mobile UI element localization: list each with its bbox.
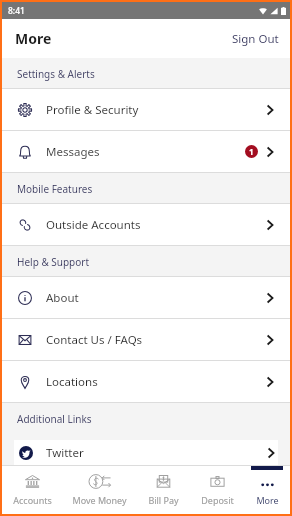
staticText: Help & Support (17, 255, 90, 269)
staticText: Accounts (13, 494, 52, 506)
staticText: Additional Links (17, 412, 92, 426)
button[interactable]: Outside Accounts (2, 204, 290, 245)
button[interactable]: Twitter (14, 440, 278, 465)
staticText: Contact Us / FAQs (46, 332, 143, 348)
button[interactable]: More (244, 466, 290, 514)
button[interactable]: Locations (2, 361, 290, 402)
staticText: 8:41 (8, 5, 25, 17)
staticText: More (15, 29, 52, 48)
staticText: Profile & Security (46, 102, 139, 118)
button[interactable]: About (2, 277, 290, 318)
staticText: Deposit (201, 494, 234, 506)
button[interactable]: Profile & Security (2, 89, 290, 130)
button[interactable]: Deposit (190, 466, 244, 514)
staticText: Mobile Features (17, 182, 93, 196)
button[interactable]: Contact Us / FAQs (2, 319, 290, 360)
button[interactable]: Accounts (2, 466, 62, 514)
staticText: 1 (249, 146, 254, 157)
staticText: About (46, 290, 79, 306)
staticText: Twitter (46, 445, 84, 461)
staticText: Bill Pay (148, 494, 179, 506)
button[interactable]: Bill Pay (136, 466, 190, 514)
staticText: Locations (46, 374, 98, 390)
staticText: Messages (46, 144, 100, 160)
staticText: Outside Accounts (46, 217, 141, 233)
staticText: Move Money (72, 494, 127, 506)
staticText: More (256, 494, 279, 506)
button[interactable]: Move Money (62, 466, 136, 514)
staticText: Sign Out (232, 31, 279, 47)
button[interactable]: Messages (2, 131, 290, 172)
button[interactable]: Sign Out (221, 22, 290, 56)
staticText: Settings & Alerts (17, 67, 95, 81)
